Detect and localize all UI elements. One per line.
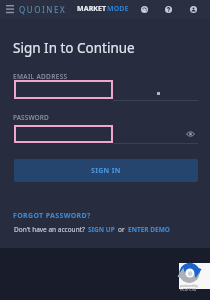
- staticText: PASSWORD: [13, 113, 49, 122]
- button[interactable]: reCAPTCHA: [179, 263, 210, 289]
- button[interactable]: ENTER DEMO: [128, 225, 170, 234]
- button[interactable]: FORGOT PASSWORD?: [13, 211, 91, 221]
- staticText: SIGN IN: [91, 166, 121, 176]
- staticText: EMAIL ADDRESS: [13, 72, 68, 81]
- staticText: QUOINEX: [19, 4, 67, 15]
- button[interactable]: SIGN UP: [88, 225, 115, 234]
- button[interactable]: [14, 80, 113, 99]
- button[interactable]: SIGN IN: [14, 159, 198, 182]
- staticText: protected by reCAPTCHA: [180, 284, 210, 292]
- button[interactable]: Show password: [185, 128, 196, 139]
- button[interactable]: [14, 125, 113, 143]
- button[interactable]: Theme: [138, 3, 151, 16]
- button[interactable]: Menu: [2, 2, 17, 17]
- staticText: Sign In to Continue: [13, 39, 135, 57]
- staticText: Don't have an account?: [14, 225, 85, 234]
- staticText: or: [118, 225, 125, 234]
- button[interactable]: Help: [162, 3, 175, 16]
- staticText: MODE: [107, 4, 129, 14]
- button[interactable]: Account: [187, 3, 200, 16]
- staticText: MARKET: [77, 4, 107, 14]
